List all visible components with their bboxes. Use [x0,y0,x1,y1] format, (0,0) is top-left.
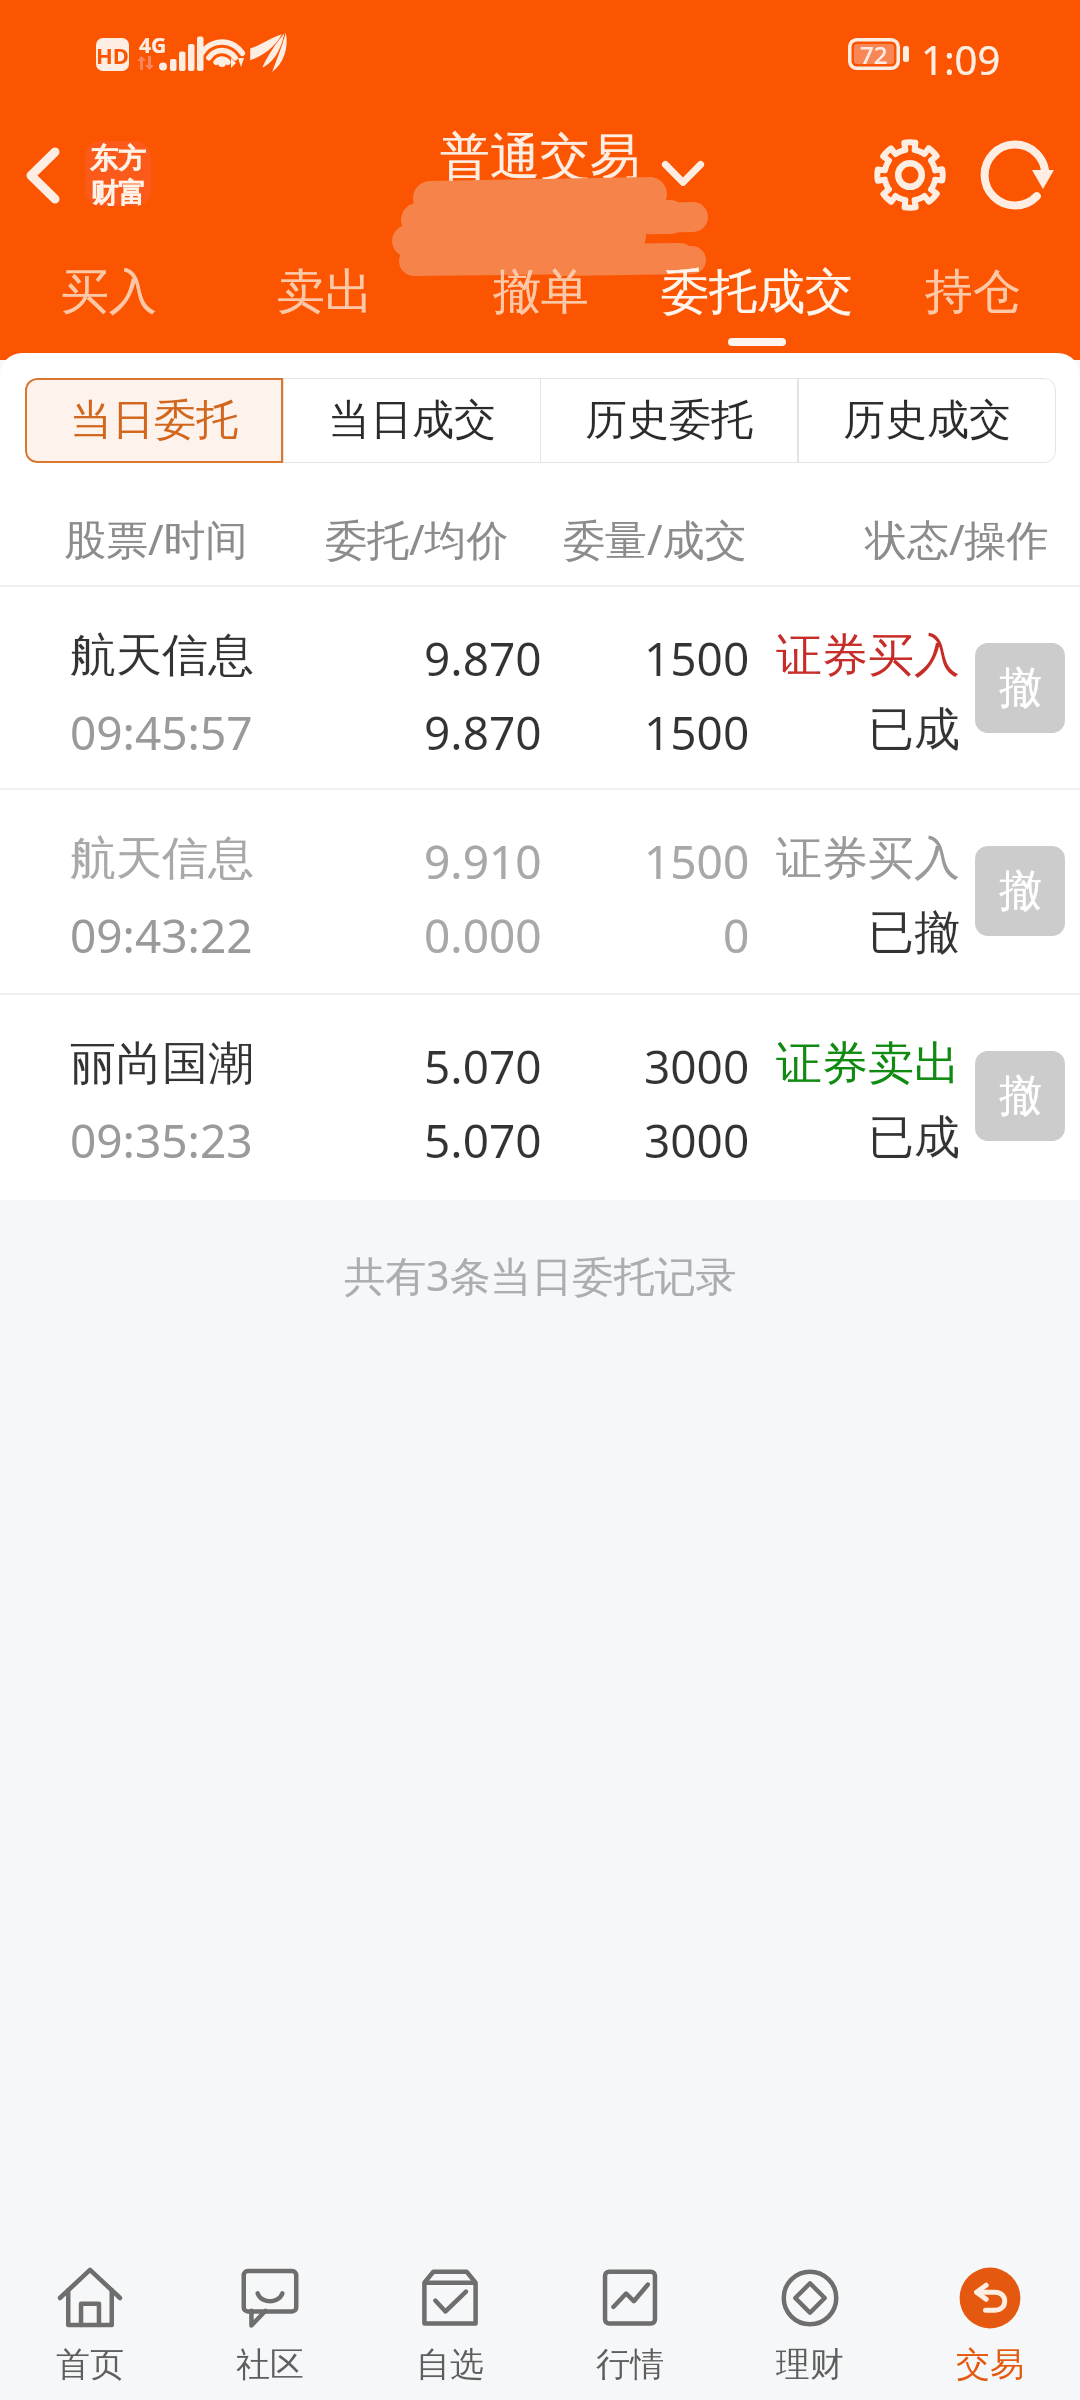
staticText: 行情 [596,2343,664,2386]
staticText: 状态/操作 [865,510,1049,567]
button[interactable]: Refresh [970,130,1060,220]
button[interactable]: 撤单 [433,262,649,354]
staticText: 撤 [999,1069,1042,1123]
staticText: 股票/时间 [64,510,248,567]
staticText: 财富 [90,176,146,206]
button[interactable]: 交易 [900,2220,1080,2400]
button[interactable]: 自选 [360,2220,540,2400]
button[interactable]: Back [0,130,86,220]
staticText: 72 [860,38,888,70]
staticText: 09:43:22 [70,904,253,967]
staticText: 9.910 [424,830,542,893]
staticText: 5.070 [424,1109,542,1172]
button[interactable]: Settings [865,130,955,220]
staticText: 当日委托 [70,394,238,447]
staticText: 共有3条当日委托记录 [344,1247,737,1303]
staticText: 东方 [90,141,146,176]
staticText: 证券买入 [776,830,960,888]
staticText: 航天信息 [70,627,254,685]
staticText: 自选 [416,2343,484,2386]
staticText: 撤 [999,661,1042,715]
staticText: 1500 [644,830,750,893]
button[interactable]: 历史成交 [798,378,1056,463]
staticText: HD [96,40,129,70]
button[interactable] [0,993,1080,1196]
staticText: 3000 [644,1035,750,1098]
staticText: 首页 [56,2343,124,2386]
staticText: 撤 [999,864,1042,918]
staticText: 证券卖出 [776,1035,960,1093]
staticText: 航天信息 [70,830,254,888]
staticText: 委量/成交 [563,510,747,567]
button[interactable]: 卖出 [217,262,433,354]
staticText: 已撤 [868,904,960,962]
staticText: 丽尚国潮 [70,1035,254,1093]
staticText: 理财 [776,2343,844,2386]
staticText: 社区 [236,2343,304,2386]
staticText: 委托成交 [661,262,853,322]
button[interactable]: 首页 [0,2220,180,2400]
button[interactable]: 撤单 [975,643,1065,733]
staticText: 已成 [868,701,960,759]
staticText: 9.870 [424,701,542,764]
staticText: 1500 [644,627,750,690]
staticText: 卖出 [277,262,373,322]
staticText: 0.000 [424,904,542,967]
staticText: 4G [139,31,167,60]
staticText: 0 [723,904,750,967]
staticText: 持仓 [925,262,1021,322]
button[interactable]: 买入 [1,262,217,354]
staticText: 撤单 [493,262,589,322]
staticText: 证券买入 [776,627,960,685]
staticText: 3000 [644,1109,750,1172]
staticText: 买入 [61,262,157,322]
staticText: 历史委托 [585,394,753,447]
button[interactable]: 理财 [720,2220,900,2400]
button[interactable]: 撤单 [975,1051,1065,1141]
staticText: 9.870 [424,627,542,690]
button[interactable] [0,585,1080,788]
button[interactable]: 社区 [180,2220,360,2400]
button[interactable]: 当日委托 [25,378,283,463]
button[interactable]: 委托成交 [649,262,865,354]
button[interactable] [0,788,1080,991]
staticText: 1500 [644,701,750,764]
staticText: 交易 [956,2343,1024,2386]
staticText: 普通交易 [440,126,640,184]
button[interactable]: 持仓 [865,262,1080,354]
button[interactable]: 撤单 [975,846,1065,936]
button[interactable]: 当日成交 [283,378,541,463]
staticText: 1:09 [921,32,1001,86]
button[interactable]: 行情 [540,2220,720,2400]
staticText: 09:45:57 [70,701,253,764]
button[interactable]: 历史委托 [540,378,798,463]
staticText: 当日成交 [328,394,496,447]
staticText: 5.070 [424,1035,542,1098]
staticText: 09:35:23 [70,1109,253,1172]
staticText: 历史成交 [843,394,1011,447]
staticText: 委托/均价 [325,510,509,567]
staticText: 已成 [868,1109,960,1167]
